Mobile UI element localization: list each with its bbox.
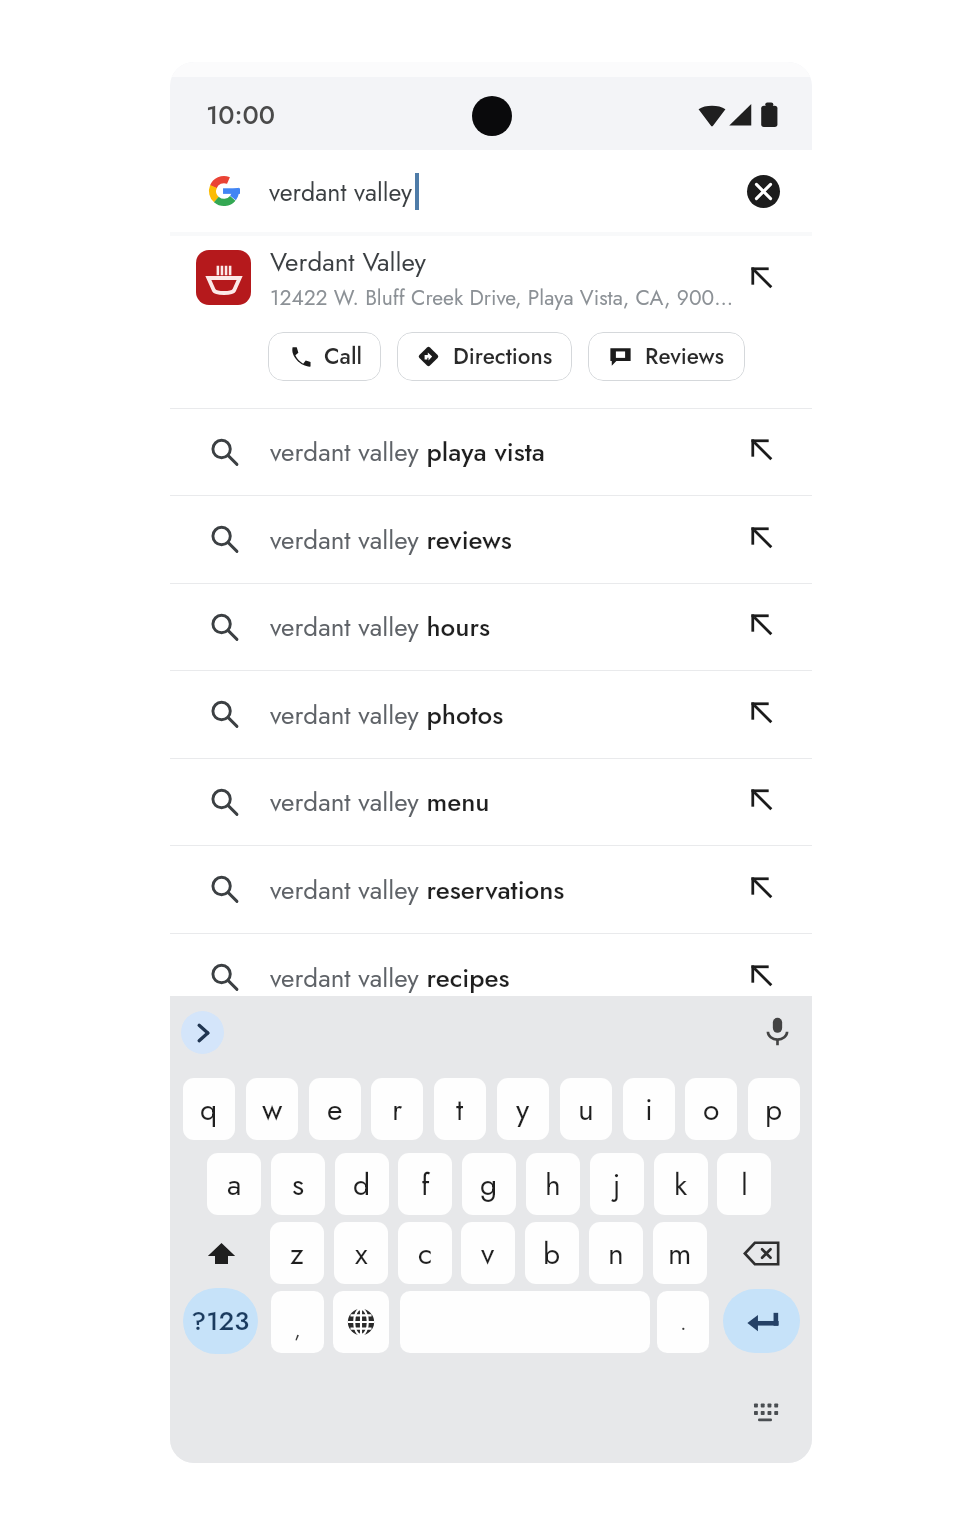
button[interactable]: y xyxy=(497,1078,549,1140)
button[interactable]: g xyxy=(462,1153,516,1215)
staticText: f xyxy=(421,1163,430,1206)
button[interactable]: i xyxy=(623,1078,675,1140)
button[interactable]: Voice input xyxy=(754,1008,800,1054)
button[interactable]: Reviews xyxy=(588,332,745,381)
staticText: l xyxy=(741,1163,748,1206)
staticText: Reviews xyxy=(645,340,725,373)
button[interactable]: s xyxy=(271,1153,325,1215)
button[interactable]: z xyxy=(270,1222,324,1284)
button[interactable]: f xyxy=(398,1153,452,1215)
button[interactable]: Insert suggestion xyxy=(738,426,784,472)
staticText: u xyxy=(578,1088,594,1131)
button[interactable]: p xyxy=(748,1078,800,1140)
button[interactable]: l xyxy=(717,1153,771,1215)
staticText: h xyxy=(545,1163,561,1206)
button[interactable]: Shift xyxy=(183,1222,259,1284)
button[interactable]: b xyxy=(525,1222,579,1284)
button[interactable]: verdant valley hours xyxy=(170,584,812,670)
staticText: b xyxy=(543,1232,561,1275)
staticText: verdant valley photos xyxy=(270,696,504,734)
button[interactable]: Insert suggestion xyxy=(742,258,780,296)
button[interactable]: Directions xyxy=(397,332,572,381)
button[interactable]: v xyxy=(461,1222,515,1284)
staticText: z xyxy=(290,1232,304,1275)
staticText: verdant valley reviews xyxy=(270,521,512,559)
button[interactable]: Insert suggestion xyxy=(738,952,784,998)
staticText: Verdant Valley xyxy=(270,243,426,281)
staticText: r xyxy=(392,1088,403,1131)
button[interactable]: Insert suggestion xyxy=(738,776,784,822)
staticText: e xyxy=(327,1088,343,1131)
staticText: , xyxy=(294,1313,301,1345)
button[interactable]: o xyxy=(685,1078,737,1140)
button[interactable]: m xyxy=(653,1222,707,1284)
staticText: w xyxy=(262,1088,283,1131)
staticText: ?123 xyxy=(191,1302,250,1340)
button[interactable]: h xyxy=(526,1153,580,1215)
button[interactable]: Insert suggestion xyxy=(738,514,784,560)
staticText: 10:00 xyxy=(206,96,276,134)
button[interactable]: verdant valley photos xyxy=(170,671,812,758)
button[interactable]: Expand suggestions xyxy=(181,1011,224,1054)
button[interactable]: Insert suggestion xyxy=(738,689,784,735)
staticText: o xyxy=(703,1088,720,1131)
button[interactable]: Insert suggestion xyxy=(738,864,784,910)
staticText: n xyxy=(608,1232,624,1275)
button[interactable]: x xyxy=(334,1222,388,1284)
button[interactable]: q xyxy=(183,1078,235,1140)
staticText: p xyxy=(765,1088,783,1131)
button[interactable]: d xyxy=(335,1153,389,1215)
button[interactable]: e xyxy=(309,1078,361,1140)
button[interactable]: t xyxy=(434,1078,486,1140)
staticText: Call xyxy=(324,340,362,373)
button[interactable]: c xyxy=(398,1222,452,1284)
button[interactable]: verdant valley playa vista xyxy=(170,409,812,495)
staticText: k xyxy=(674,1163,688,1206)
button[interactable]: verdant valley xyxy=(170,150,812,232)
button[interactable]: Insert suggestion xyxy=(738,601,784,647)
staticText: c xyxy=(418,1232,433,1275)
button[interactable]: Change language xyxy=(333,1291,389,1353)
button[interactable]: ?123 xyxy=(183,1288,258,1354)
button[interactable]: verdant valley menu xyxy=(170,759,812,845)
staticText: i xyxy=(645,1088,653,1131)
button[interactable]: a xyxy=(207,1153,261,1215)
staticText: d xyxy=(353,1163,371,1206)
button[interactable]: n xyxy=(589,1222,643,1284)
staticText: q xyxy=(200,1088,218,1131)
button[interactable]: verdant valley reservations xyxy=(170,846,812,933)
staticText: verdant valley playa vista xyxy=(270,433,545,471)
staticText: t xyxy=(456,1088,464,1131)
staticText: m xyxy=(668,1232,692,1275)
button[interactable]: Hide keyboard xyxy=(748,1394,784,1430)
staticText: s xyxy=(292,1163,305,1206)
staticText: j xyxy=(613,1163,621,1206)
button[interactable]: Enter xyxy=(723,1289,800,1353)
button[interactable]: verdant valley recipes xyxy=(170,934,812,1021)
button[interactable]: Verdant Valley xyxy=(170,232,812,408)
button[interactable]: u xyxy=(560,1078,612,1140)
button[interactable]: . xyxy=(657,1291,709,1353)
staticText: Directions xyxy=(453,340,553,373)
button[interactable]: verdant valley reviews xyxy=(170,496,812,583)
button[interactable]: Backspace xyxy=(723,1222,799,1284)
button[interactable]: w xyxy=(246,1078,298,1140)
staticText: g xyxy=(480,1163,498,1206)
button[interactable]: , xyxy=(271,1291,324,1353)
staticText: verdant valley reservations xyxy=(270,871,565,909)
staticText: verdant valley recipes xyxy=(270,959,510,997)
staticText: y xyxy=(516,1088,530,1131)
staticText: a xyxy=(227,1163,242,1206)
staticText: verdant valley menu xyxy=(270,783,490,821)
staticText: verdant valley hours xyxy=(270,608,491,646)
button[interactable]: Clear query xyxy=(736,164,790,218)
staticText: 12422 W. Bluff Creek Drive, Playa Vista,… xyxy=(270,283,734,313)
button[interactable]: j xyxy=(590,1153,644,1215)
staticText: x xyxy=(355,1232,368,1275)
staticText: v xyxy=(481,1232,495,1275)
button[interactable]: k xyxy=(654,1153,708,1215)
button[interactable]: r xyxy=(371,1078,423,1140)
staticText: verdant valley xyxy=(269,174,413,210)
button[interactable]: Call xyxy=(268,332,381,381)
